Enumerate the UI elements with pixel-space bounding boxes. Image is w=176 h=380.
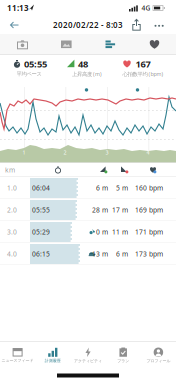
staticText: 4 — [146, 149, 149, 156]
staticText: 0 m — [96, 228, 108, 236]
staticText: 48 — [78, 58, 88, 70]
staticText: 17 m — [112, 206, 128, 214]
staticText: 5 m — [116, 184, 128, 192]
staticText: 2020/02/22 - 8:03 — [53, 20, 123, 30]
button[interactable]: Back — [3, 16, 21, 34]
staticText: 167 — [135, 58, 150, 70]
staticText: 6 m — [116, 250, 128, 258]
staticText: 06:04 — [32, 184, 50, 192]
button[interactable]: Photos — [61, 39, 72, 49]
staticText: 171 bpm — [135, 228, 163, 236]
staticText: 6 m — [96, 184, 108, 192]
staticText: プラン — [117, 358, 129, 363]
staticText: 2.0 — [7, 206, 17, 214]
staticText: 169 bpm — [135, 206, 163, 214]
button[interactable]: Plan — [106, 343, 141, 367]
staticText: 4.0 — [7, 250, 17, 258]
staticText: ニュースフィード — [2, 358, 34, 363]
staticText: 平均ペース — [16, 71, 41, 77]
button[interactable]: Profile — [141, 343, 176, 367]
staticText: 160 bpm — [135, 184, 163, 192]
staticText: 1.0 — [7, 184, 17, 192]
staticText: 3.0 — [7, 228, 17, 236]
staticText: 上昇高度 (m) — [72, 70, 102, 78]
button[interactable]: More — [154, 25, 164, 27]
staticText: km — [5, 166, 15, 174]
staticText: アクティビティ — [74, 358, 102, 363]
button[interactable]: Statistics — [105, 40, 115, 49]
button[interactable]: Heart rate — [150, 40, 159, 49]
staticText: 2 — [63, 149, 66, 156]
staticText: プロフィール — [146, 358, 170, 363]
button[interactable]: Statistics — [35, 343, 70, 367]
staticText: 05:55 — [32, 206, 50, 214]
staticText: 05:55 — [24, 58, 47, 70]
staticText: 11 m — [112, 228, 128, 236]
staticText: 3 — [105, 149, 108, 156]
staticText: 06:15 — [32, 250, 50, 258]
staticText: 13 m — [92, 250, 108, 258]
staticText: 計測履歴 — [45, 358, 61, 363]
button[interactable]: Share — [132, 18, 141, 32]
staticText: 11:13 — [7, 3, 29, 13]
button[interactable]: News feed — [0, 343, 35, 367]
staticText: 05:29 — [32, 228, 50, 236]
staticText: 1 — [22, 149, 25, 156]
staticText: 173 bpm — [135, 250, 163, 258]
staticText: 心拍数平均 (bpm) — [122, 70, 163, 78]
button[interactable]: Add photo — [17, 39, 28, 49]
staticText: 4G — [141, 4, 150, 12]
button[interactable]: Activity — [70, 343, 105, 367]
staticText: 28 m — [92, 206, 108, 214]
